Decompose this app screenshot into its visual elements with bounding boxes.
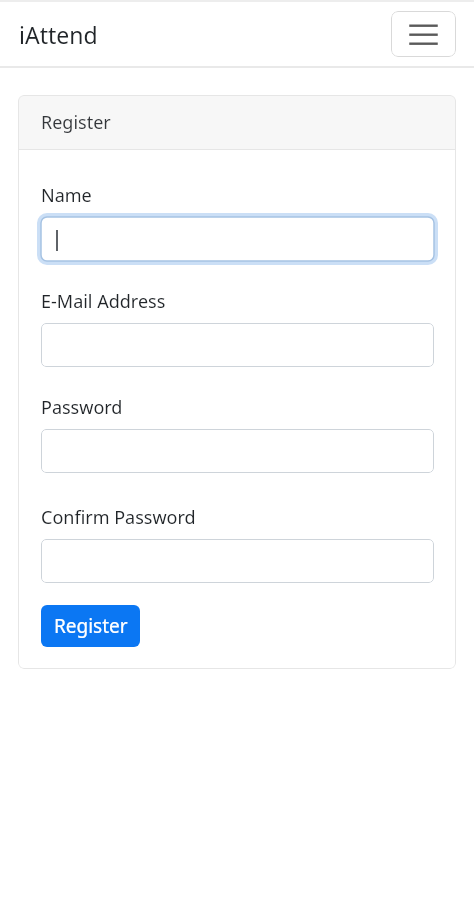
staticText: E-Mail Address [41,289,166,314]
button[interactable] [41,429,434,473]
staticText: Register [54,613,128,639]
staticText: iAttend [19,19,98,50]
staticText: Password [41,395,123,420]
button[interactable] [41,539,434,583]
staticText: Confirm Password [41,505,196,530]
button[interactable]: iAttend [19,19,98,50]
staticText: Name [41,183,92,208]
button[interactable] [41,217,434,261]
staticText: Register [41,110,111,135]
button[interactable]: Register [41,605,140,647]
button[interactable] [391,11,456,57]
button[interactable] [41,323,434,367]
